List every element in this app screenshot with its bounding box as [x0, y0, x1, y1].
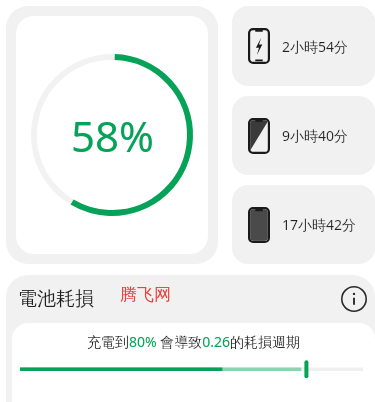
staticText: 9小時40分 [282, 126, 349, 145]
staticText: 腾飞网 [120, 284, 171, 305]
button[interactable]: 58% [6, 6, 218, 264]
staticText: 充電到80% 會導致0.26的耗損週期 [87, 332, 301, 351]
staticText: 2小時54分 [282, 37, 349, 56]
button[interactable]: 9小時40分 [232, 96, 375, 175]
staticText: 17小時42分 [282, 215, 357, 234]
staticText: 58% [71, 107, 154, 164]
staticText: 電池耗損 [18, 287, 94, 311]
button[interactable]: Information [337, 282, 371, 316]
button[interactable]: 2小時54分 [232, 6, 375, 86]
button[interactable] [20, 360, 363, 382]
button[interactable]: 17小時42分 [232, 185, 375, 264]
